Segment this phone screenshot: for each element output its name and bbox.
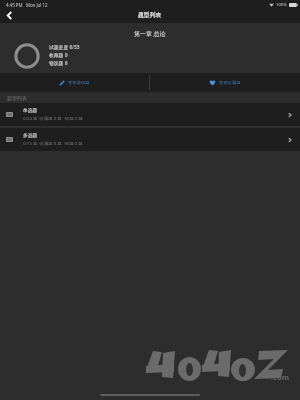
staticText: 0/13 题 收藏题 0 题 错题 0 题 <box>23 140 83 146</box>
staticText: 题型列表 <box>138 11 162 18</box>
staticText: 0/24 题 收藏题 0 题 错题 0 题 <box>23 115 83 121</box>
staticText: 查看收藏题 <box>219 80 241 85</box>
staticText: 查看做错题 <box>68 80 90 85</box>
staticText: 题型列表 <box>7 95 27 101</box>
staticText: 100% <box>276 2 287 8</box>
staticText: 4:45 PM Mon Jul 12 <box>6 2 48 8</box>
button[interactable]: 查看收藏题 <box>150 73 300 92</box>
staticText: 单选题 <box>23 107 38 113</box>
staticText: 第一章 总论 <box>134 30 166 38</box>
button[interactable]: 多选题 <box>0 128 300 151</box>
button[interactable]: 单选题 <box>0 103 300 126</box>
button[interactable]: Back <box>1 8 16 23</box>
staticText: .com <box>271 372 289 382</box>
staticText: 多选题 <box>23 132 38 138</box>
staticText: 错误题 0 <box>49 60 68 67</box>
button[interactable]: 查看做错题 <box>0 73 149 92</box>
staticText: 试题进度 0/33 <box>49 44 80 51</box>
staticText: 收藏题 0 <box>49 52 68 59</box>
